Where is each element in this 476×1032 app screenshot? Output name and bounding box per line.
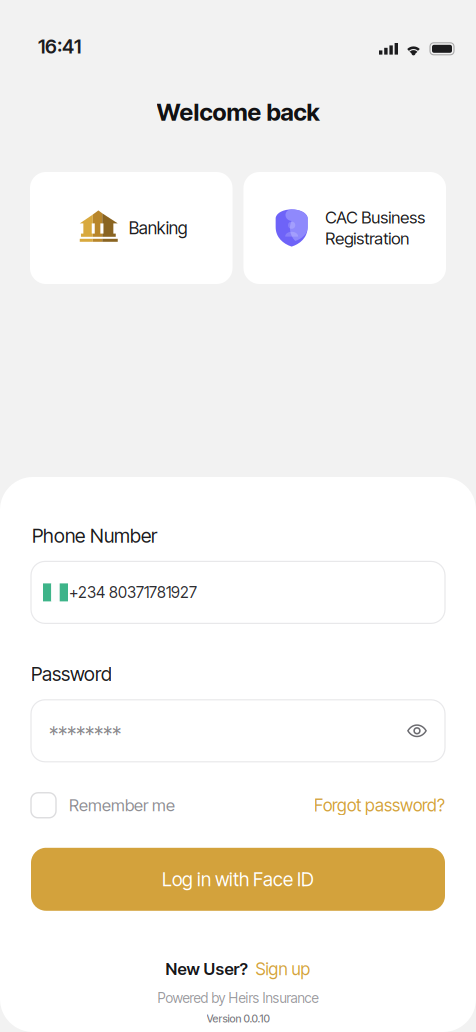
staticText: Password bbox=[31, 662, 112, 686]
staticText: Banking bbox=[129, 217, 188, 238]
staticText: Sign up bbox=[255, 959, 310, 979]
button[interactable]: Show password bbox=[407, 723, 427, 738]
staticText: 16:41 bbox=[38, 35, 81, 58]
staticText: Powered by Heirs Insurance bbox=[157, 990, 318, 1006]
button[interactable]: Banking bbox=[30, 172, 232, 284]
staticText: +234 80371781927 bbox=[69, 583, 197, 602]
staticText: Registration bbox=[325, 228, 409, 249]
button[interactable]: Sign up bbox=[255, 959, 310, 979]
button[interactable]: Remember me bbox=[31, 793, 175, 818]
button[interactable]: Log in with Face ID bbox=[31, 848, 445, 911]
button[interactable]: Forgot password? bbox=[314, 795, 445, 816]
staticText: Log in with Face ID bbox=[162, 868, 314, 891]
staticText: CAC Business bbox=[325, 207, 425, 228]
staticText: Version 0.0.10 bbox=[206, 1012, 269, 1025]
staticText: Welcome back bbox=[156, 97, 319, 126]
staticText: Remember me bbox=[69, 795, 175, 815]
staticText: ******** bbox=[49, 722, 121, 747]
staticText: New User? bbox=[165, 959, 247, 979]
staticText: Forgot password? bbox=[314, 795, 445, 816]
button[interactable]: CAC Business bbox=[243, 172, 446, 284]
staticText: Phone Number bbox=[32, 524, 157, 547]
